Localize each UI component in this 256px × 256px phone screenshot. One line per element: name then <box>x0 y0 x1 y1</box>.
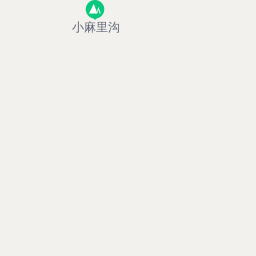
staticText: 小麻里沟 <box>72 20 120 35</box>
button[interactable]: 小麻里沟 <box>71 0 127 34</box>
